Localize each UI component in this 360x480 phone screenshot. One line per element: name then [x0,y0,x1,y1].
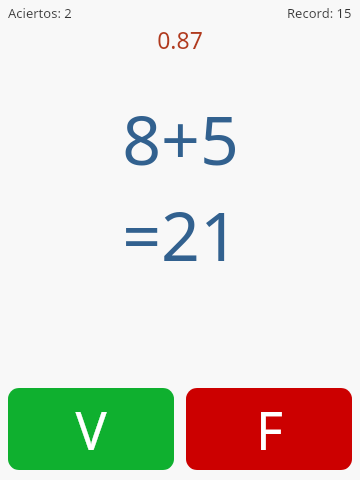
button[interactable]: V [8,388,174,470]
staticText: Aciertos: 2 [8,4,72,22]
staticText: 8+5 [122,92,239,185]
staticText: =21 [122,188,239,281]
staticText: 0.87 [157,24,203,55]
staticText: V [75,394,107,465]
staticText: Record: 15 [287,4,352,22]
button[interactable]: F [186,388,352,470]
staticText: F [256,394,283,465]
